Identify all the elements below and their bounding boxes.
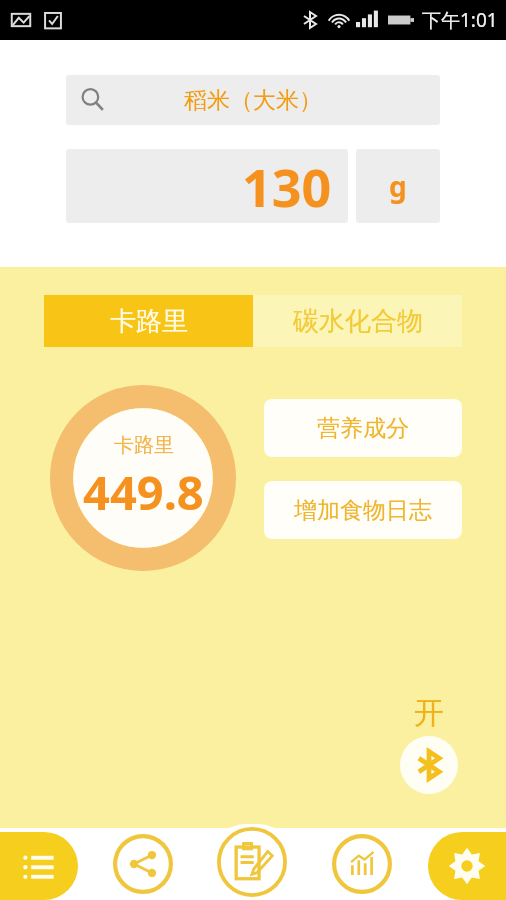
staticText: 增加食物日志 [294,496,432,525]
button[interactable]: Statistics [330,832,394,896]
button[interactable]: Food log [208,824,296,900]
button[interactable]: Bluetooth [400,736,458,794]
button[interactable]: 碳水化合物 [253,295,462,347]
staticText: 碳水化合物 [293,305,423,338]
button[interactable]: 稻米（大米） [66,75,440,125]
button[interactable]: 卡路里 [44,295,253,347]
button[interactable]: 营养成分 [264,399,462,457]
button[interactable]: Share [111,832,175,896]
button[interactable]: 130 [66,149,348,223]
staticText: 下午1:01 [422,7,498,33]
button[interactable]: Settings [428,832,506,900]
staticText: 卡路里 [110,305,188,338]
staticText: 130 [242,151,332,222]
staticText: 449.8 [83,460,204,524]
staticText: g [389,167,407,205]
staticText: 卡路里 [114,433,174,458]
staticText: 稻米（大米） [184,86,322,115]
button[interactable]: g [356,149,440,223]
button[interactable]: List [0,832,78,900]
button[interactable]: 增加食物日志 [264,481,462,539]
staticText: 开 [414,694,444,732]
staticText: 营养成分 [317,414,409,443]
